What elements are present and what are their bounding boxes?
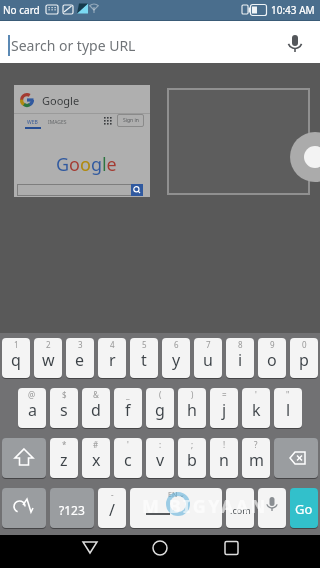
staticText: Go <box>295 500 313 518</box>
staticText: i <box>238 349 243 371</box>
staticText: 10:43 AM <box>271 3 315 17</box>
staticText: Sign in <box>123 117 139 124</box>
button[interactable]: 9 <box>258 338 286 378</box>
button[interactable] <box>258 488 286 528</box>
staticText: w <box>42 349 55 371</box>
staticText: @ <box>28 389 36 400</box>
button[interactable]: 5 <box>130 338 158 378</box>
staticText: h <box>187 399 197 421</box>
staticText: q <box>11 349 21 371</box>
staticText: _ <box>126 389 130 400</box>
staticText: s <box>60 399 68 421</box>
staticText: 9 <box>270 339 275 350</box>
button[interactable]: = <box>210 388 238 428</box>
staticText: x <box>92 449 101 471</box>
button[interactable]: & <box>82 388 110 428</box>
button[interactable] <box>130 535 190 568</box>
staticText: 0 <box>302 339 307 350</box>
staticText: 1 <box>14 339 19 350</box>
staticText: a <box>28 399 37 421</box>
staticText: 3 <box>78 339 83 350</box>
button[interactable] <box>200 535 260 568</box>
staticText: M BIGYAAN <box>142 494 268 519</box>
button[interactable]: ! <box>210 438 238 478</box>
staticText: p <box>299 349 309 371</box>
staticText: f <box>125 399 131 421</box>
staticText: y <box>172 349 181 371</box>
button[interactable] <box>2 438 46 478</box>
staticText: 8 <box>238 339 243 350</box>
button[interactable]: @ <box>18 388 46 428</box>
staticText: = <box>222 389 227 400</box>
button[interactable]: : <box>146 438 174 478</box>
staticText: * <box>62 439 67 450</box>
button[interactable]: EN ⌄ <box>130 488 222 528</box>
staticText: 5 <box>142 339 147 350</box>
staticText: 4 <box>110 339 115 350</box>
button[interactable]: 0 <box>290 338 318 378</box>
staticText: WEB <box>27 119 38 126</box>
button[interactable]: 3 <box>66 338 94 378</box>
button[interactable]: _ <box>114 388 142 428</box>
staticText: EN ⌄ <box>168 490 185 500</box>
button[interactable]: # <box>82 438 110 478</box>
button[interactable]: ( <box>146 388 174 428</box>
staticText: $ <box>62 389 67 400</box>
button[interactable]: 7 <box>194 338 222 378</box>
button[interactable] <box>274 438 318 478</box>
button[interactable] <box>167 88 310 195</box>
button[interactable]: Google <box>14 85 150 197</box>
staticText: ) <box>191 389 194 400</box>
staticText: ( <box>159 389 162 400</box>
button[interactable]: 2 <box>34 338 62 378</box>
staticText: & <box>93 389 99 400</box>
button[interactable] <box>290 132 320 182</box>
staticText: # <box>93 439 99 450</box>
staticText: b <box>187 449 197 471</box>
button[interactable]: ' <box>242 388 270 428</box>
button[interactable]: 6 <box>162 338 190 378</box>
staticText: Google <box>42 93 80 108</box>
staticText: Search or type URL <box>11 36 136 55</box>
button[interactable]: 8 <box>226 338 254 378</box>
button[interactable]: " <box>274 388 302 428</box>
staticText: ? <box>254 439 258 450</box>
staticText: n <box>219 449 229 471</box>
staticText: ?123 <box>59 502 85 518</box>
staticText: z <box>60 449 68 471</box>
staticText: t <box>141 349 147 371</box>
button[interactable] <box>60 535 120 568</box>
staticText: v <box>156 449 165 471</box>
staticText: " <box>286 389 290 400</box>
button[interactable]: - <box>98 488 126 528</box>
staticText: j <box>222 399 227 421</box>
button[interactable]: $ <box>50 388 78 428</box>
button[interactable] <box>2 488 46 528</box>
staticText: / <box>109 499 115 521</box>
button[interactable]: 1 <box>2 338 30 378</box>
staticText: ' <box>127 439 129 450</box>
button[interactable]: Go <box>290 488 318 528</box>
button[interactable]: ? <box>242 438 270 478</box>
staticText: 7 <box>206 339 211 350</box>
staticText: .com <box>230 504 251 516</box>
button[interactable]: Search or type URL <box>0 20 320 63</box>
staticText: ' <box>255 389 257 400</box>
button[interactable]: ; <box>178 438 206 478</box>
staticText: m <box>249 449 264 471</box>
staticText: c <box>124 449 132 471</box>
staticText: e <box>75 349 85 371</box>
staticText: 6 <box>174 339 179 350</box>
staticText: : <box>159 439 162 450</box>
button[interactable]: 4 <box>98 338 126 378</box>
button[interactable]: .com <box>226 488 254 528</box>
staticText: o <box>267 349 277 371</box>
staticText: Google <box>56 152 117 177</box>
button[interactable]: ) <box>178 388 206 428</box>
staticText: No card <box>3 3 40 17</box>
button[interactable]: ' <box>114 438 142 478</box>
staticText: r <box>109 349 116 371</box>
staticText: l <box>286 399 291 421</box>
button[interactable]: * <box>50 438 78 478</box>
button[interactable]: ?123 <box>50 488 94 528</box>
